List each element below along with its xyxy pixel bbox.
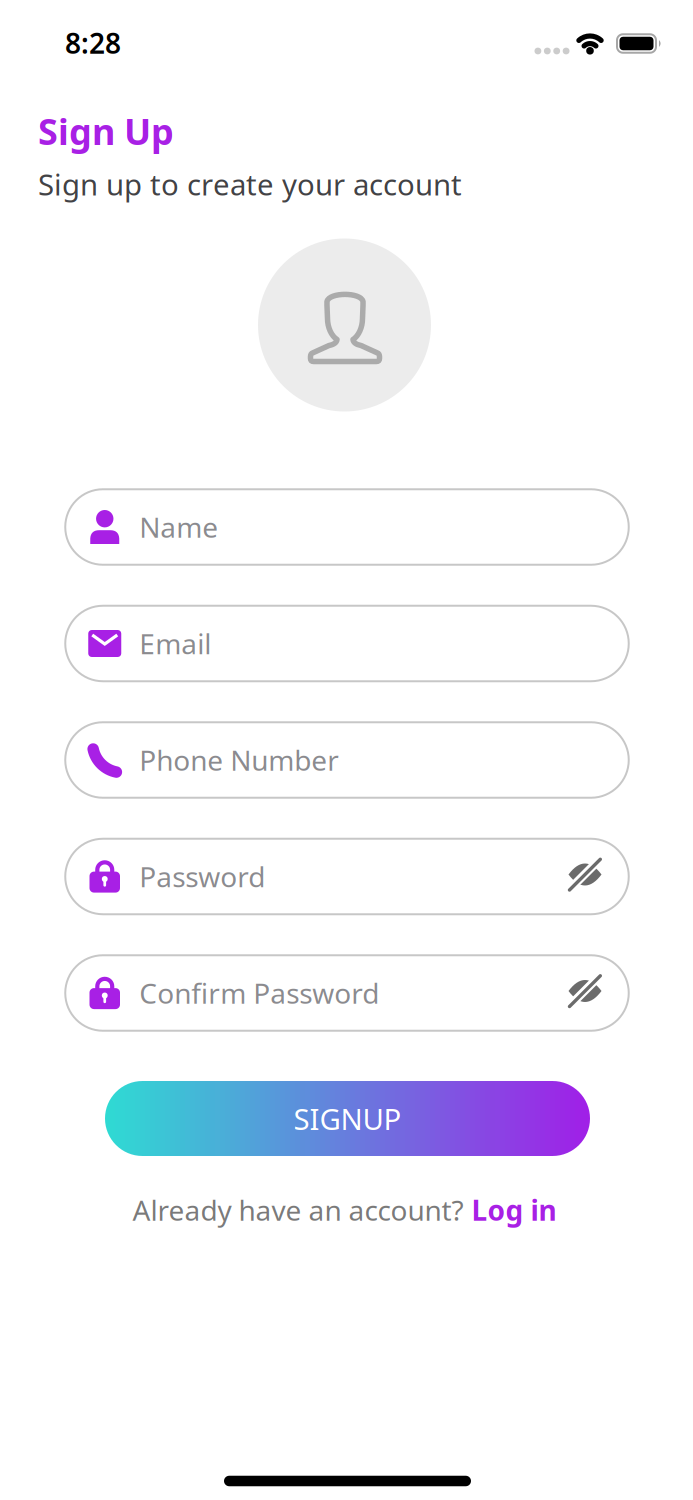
button[interactable]: Phone Number — [64, 721, 630, 799]
staticText: Confirm Password — [139, 974, 379, 1012]
button[interactable]: SIGNUP — [105, 1081, 590, 1156]
staticText: Already have an account? — [132, 1191, 463, 1229]
staticText: Sign Up — [38, 107, 174, 155]
button[interactable]: Name — [64, 488, 630, 566]
button[interactable]: Email — [64, 605, 630, 682]
button[interactable]: Password — [64, 838, 630, 915]
button[interactable]: Add profile photo — [258, 238, 431, 411]
staticText: Log in — [471, 1191, 556, 1229]
staticText: Sign up to create your account — [38, 164, 462, 203]
staticText: Password — [139, 858, 265, 895]
staticText: 8:28 — [65, 24, 121, 62]
button[interactable]: Log in — [471, 1191, 556, 1229]
button[interactable]: Toggle password visibility — [568, 858, 601, 890]
staticText: SIGNUP — [293, 1099, 401, 1138]
button[interactable]: Toggle confirm password visibility — [568, 975, 601, 1007]
button[interactable]: Confirm Password — [64, 954, 630, 1032]
staticText: Phone Number — [139, 741, 339, 779]
staticText: Email — [139, 625, 211, 662]
staticText: Name — [139, 508, 218, 546]
